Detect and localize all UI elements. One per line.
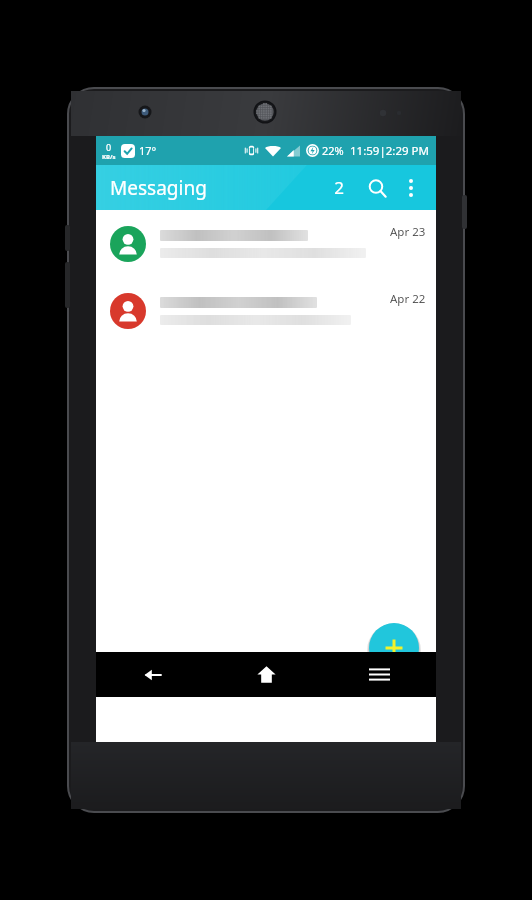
staticText: Messaging (110, 175, 207, 201)
button[interactable]: Search (358, 169, 396, 207)
button[interactable]: Apr 23 (96, 210, 436, 277)
staticText: 11:59|2:29 PM (350, 143, 429, 159)
button[interactable]: Home (210, 652, 323, 697)
staticText: 0 (106, 141, 112, 153)
staticText: 17° (139, 143, 157, 158)
staticText: Apr 23 (390, 224, 426, 240)
button[interactable]: Back (96, 652, 210, 697)
button[interactable]: More options (396, 165, 426, 210)
staticText: 2 (334, 176, 344, 199)
staticText: Apr 22 (390, 291, 426, 307)
button[interactable]: New message (367, 621, 421, 675)
button[interactable]: Recent apps (323, 652, 436, 697)
button[interactable]: 2 (326, 165, 352, 210)
staticText: 22% (322, 143, 344, 158)
button[interactable]: Apr 22 (96, 277, 436, 344)
staticText: KB/s (102, 153, 116, 161)
